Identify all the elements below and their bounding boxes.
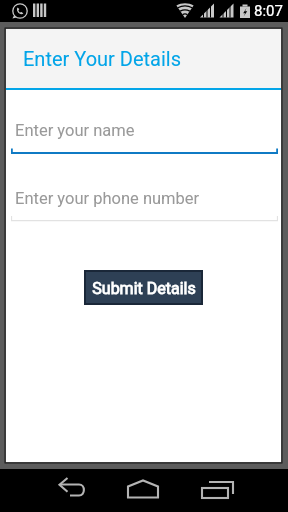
staticText: Enter your name (15, 121, 135, 140)
button[interactable]: Home (114, 469, 174, 512)
button[interactable]: Back (42, 469, 102, 512)
staticText: 8:07 (254, 2, 283, 20)
staticText: Enter your phone number (15, 189, 200, 208)
button[interactable]: Submit Details (84, 270, 203, 305)
button[interactable]: Enter your phone number (11, 189, 278, 225)
staticText: Enter Your Details (23, 47, 182, 70)
button[interactable]: Enter your name (11, 121, 278, 157)
button[interactable]: Recent apps (188, 469, 248, 512)
button[interactable]: Enter Your Details (6, 29, 281, 88)
staticText: Submit Details (92, 279, 196, 298)
